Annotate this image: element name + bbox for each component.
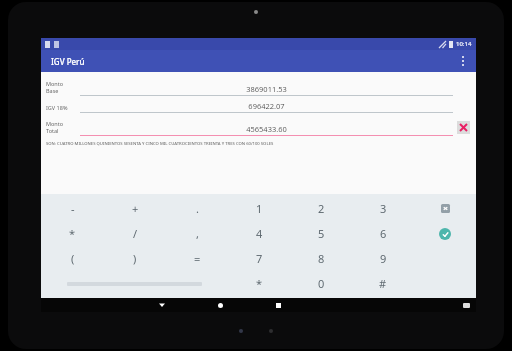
staticText: Monto [46, 80, 64, 87]
button[interactable]: Enter [414, 221, 476, 246]
button[interactable]: Clear [457, 121, 470, 134]
staticText: 4565433.60 [80, 124, 453, 134]
button[interactable]: 2 [290, 196, 352, 221]
staticText: , [196, 226, 199, 241]
button[interactable]: + [104, 196, 166, 221]
staticText: = [194, 251, 201, 266]
button[interactable]: Backspace [414, 196, 476, 221]
staticText: ) [133, 251, 137, 266]
staticText: Total [46, 127, 59, 134]
button[interactable]: Home [191, 298, 249, 312]
button[interactable]: Keyboard [458, 298, 474, 312]
button[interactable]: Back [133, 298, 191, 312]
staticText: Base [46, 87, 59, 94]
staticText: 0 [318, 276, 325, 291]
button[interactable]: 1 [228, 196, 290, 221]
staticText: 6 [380, 226, 387, 241]
staticText: 3869011.53 [80, 84, 453, 94]
button[interactable]: 8 [290, 246, 352, 271]
button[interactable]: , [166, 221, 228, 246]
button[interactable]: 4565433.60 [80, 118, 453, 136]
staticText: 10:14 [456, 40, 472, 48]
staticText: 7 [256, 251, 263, 266]
button[interactable]: 9 [352, 246, 414, 271]
button[interactable]: . [166, 196, 228, 221]
button[interactable]: Recent apps [249, 298, 307, 312]
staticText: Monto [46, 120, 64, 127]
staticText: 2 [318, 201, 325, 216]
button[interactable]: 7 [228, 246, 290, 271]
button[interactable]: - [41, 196, 104, 221]
button[interactable]: ( [41, 246, 104, 271]
button[interactable]: = [166, 246, 228, 271]
staticText: * [69, 226, 76, 241]
button[interactable]: ) [104, 246, 166, 271]
button[interactable]: 0 [290, 271, 352, 296]
button[interactable]: * [41, 221, 104, 246]
staticText: + [132, 201, 139, 216]
button[interactable]: * [228, 271, 290, 296]
staticText: ( [71, 251, 75, 266]
staticText: # [379, 276, 387, 291]
staticText: 3 [380, 201, 387, 216]
staticText: - [71, 201, 75, 216]
button[interactable]: 5 [290, 221, 352, 246]
staticText: / [133, 226, 138, 241]
staticText: IGV Perú [51, 56, 85, 67]
staticText: 696422.07 [80, 101, 453, 111]
button[interactable]: 3 [352, 196, 414, 221]
button[interactable]: More options [452, 50, 474, 72]
staticText: 9 [380, 251, 387, 266]
staticText: 8 [318, 251, 325, 266]
button[interactable]: 3869011.53 [80, 78, 453, 96]
staticText: SON: CUATRO MILLONES QUINIENTOS SESENTA … [46, 141, 274, 147]
staticText: IGV 18% [46, 104, 68, 111]
button[interactable]: # [352, 271, 414, 296]
button[interactable]: / [104, 221, 166, 246]
button[interactable]: 4 [228, 221, 290, 246]
staticText: 5 [318, 226, 325, 241]
button[interactable]: 696422.07 [80, 101, 453, 113]
button[interactable]: 6 [352, 221, 414, 246]
staticText: 4 [256, 226, 263, 241]
staticText: . [196, 201, 199, 216]
staticText: 1 [256, 201, 263, 216]
staticText: * [256, 276, 263, 291]
button[interactable]: Space [41, 271, 228, 296]
